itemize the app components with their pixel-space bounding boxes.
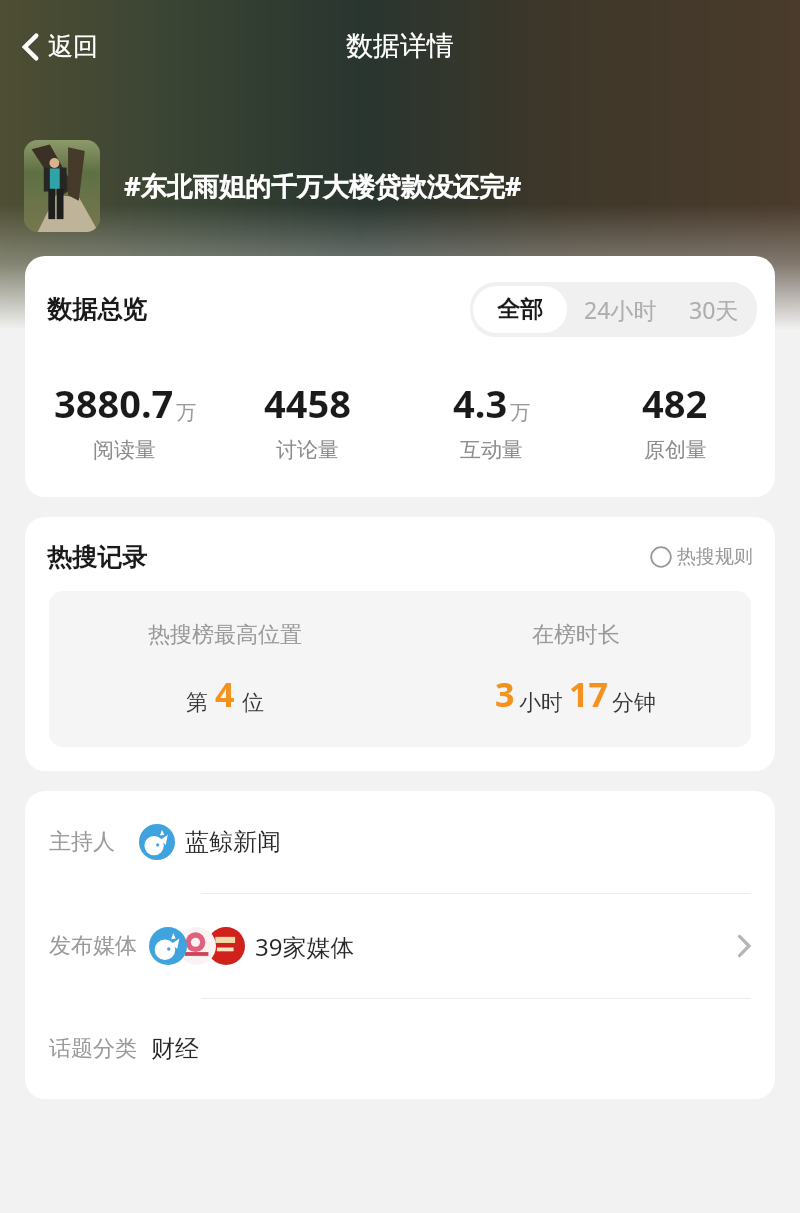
- button[interactable]: 话题分类: [25, 999, 775, 1099]
- staticText: 小时: [519, 689, 563, 717]
- staticText: 全部: [497, 295, 543, 324]
- button[interactable]: 482: [583, 377, 767, 463]
- button[interactable]: 4458: [216, 377, 399, 463]
- button[interactable]: 热搜规则: [646, 541, 757, 573]
- button[interactable]: 全部: [473, 286, 567, 333]
- staticText: 30天: [689, 294, 739, 325]
- button[interactable]: 3880.7: [33, 377, 216, 463]
- staticText: 17: [569, 671, 608, 717]
- staticText: 4458: [264, 377, 351, 429]
- staticText: 482: [642, 377, 708, 429]
- button[interactable]: 主持人: [25, 791, 775, 893]
- button[interactable]: 返回: [14, 25, 104, 68]
- staticText: 数据总览: [47, 294, 147, 325]
- staticText: 互动量: [460, 437, 523, 463]
- staticText: 第: [186, 689, 208, 717]
- button[interactable]: 话题配图: [24, 140, 100, 232]
- staticText: 万: [510, 400, 530, 425]
- staticText: 3880.7: [54, 377, 174, 429]
- staticText: 数据详情: [346, 29, 454, 63]
- staticText: 在榜时长: [532, 621, 620, 649]
- staticText: 位: [242, 689, 264, 717]
- staticText: 热搜记录: [47, 542, 147, 573]
- staticText: 4.3: [453, 377, 508, 429]
- staticText: 发布媒体: [49, 932, 137, 960]
- staticText: 蓝鲸新闻: [185, 827, 281, 857]
- button[interactable]: 4.3: [399, 377, 583, 463]
- button[interactable]: 发布媒体: [25, 894, 775, 998]
- staticText: 24小时: [584, 294, 657, 325]
- staticText: 讨论量: [276, 437, 339, 463]
- staticText: #东北雨姐的千万大楼贷款没还完#: [124, 168, 784, 204]
- button[interactable]: 24小时: [567, 285, 674, 334]
- staticText: 财经: [151, 1034, 199, 1064]
- staticText: 39家媒体: [255, 930, 355, 963]
- button[interactable]: 30天: [674, 285, 754, 334]
- other: 查看媒体列表: [735, 931, 753, 961]
- staticText: 万: [176, 400, 196, 425]
- staticText: 话题分类: [49, 1035, 137, 1063]
- staticText: 4: [215, 671, 235, 717]
- staticText: 主持人: [49, 828, 115, 856]
- staticText: 热搜榜最高位置: [148, 621, 302, 649]
- staticText: 阅读量: [93, 437, 156, 463]
- staticText: 原创量: [644, 437, 707, 463]
- staticText: 返回: [48, 31, 98, 62]
- staticText: 3: [495, 671, 515, 717]
- staticText: 热搜规则: [677, 545, 753, 569]
- staticText: 分钟: [612, 689, 656, 717]
